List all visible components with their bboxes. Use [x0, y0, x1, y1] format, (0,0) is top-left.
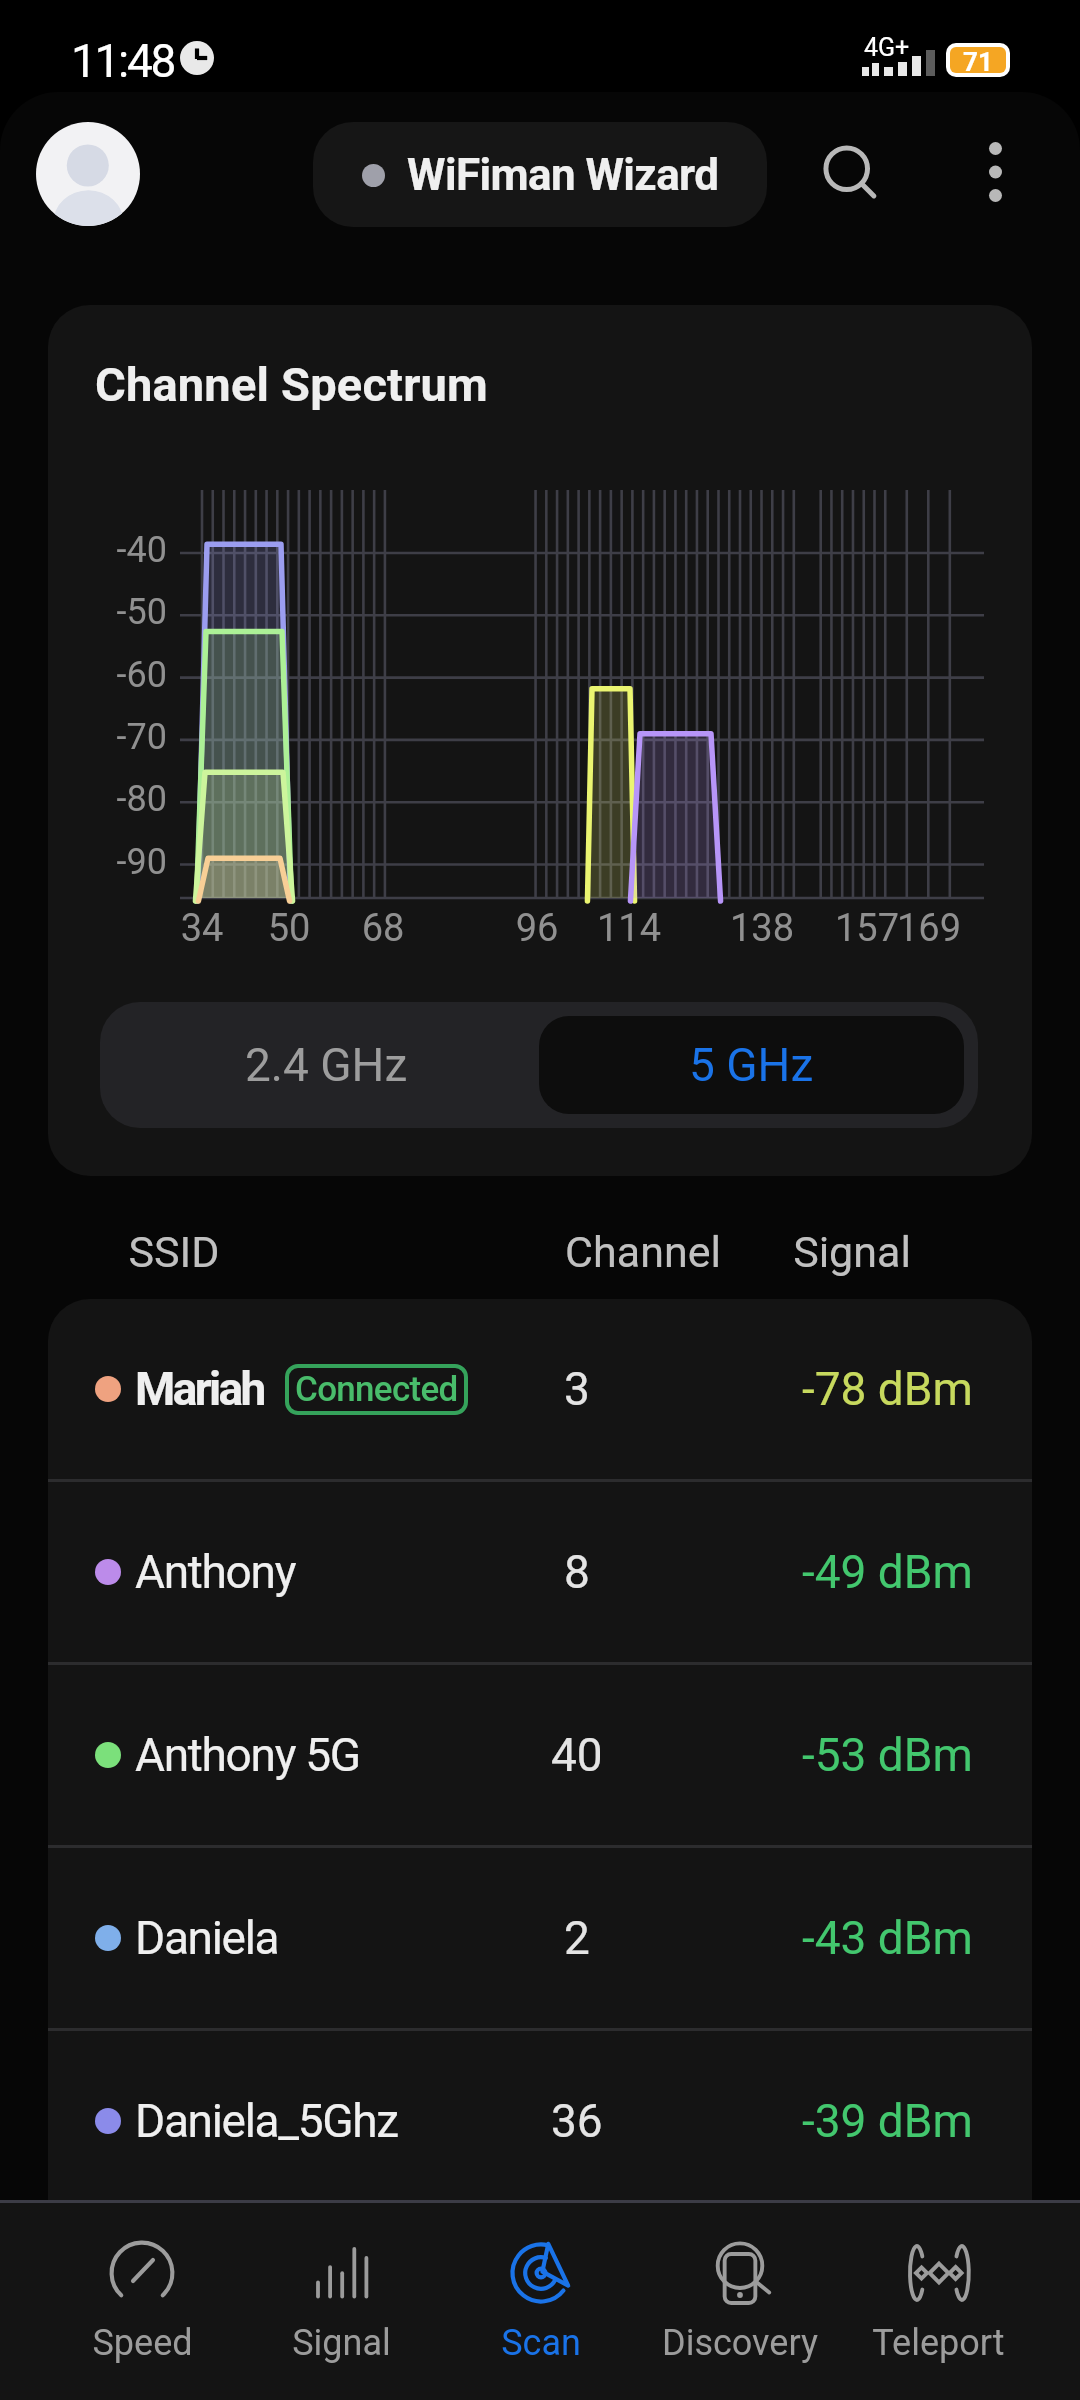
staticText: Daniela_5Ghz [135, 2094, 398, 2148]
staticText: WiFiman Wizard [407, 149, 719, 201]
staticText: 36 [551, 2094, 603, 2148]
staticText: Mariah [135, 1362, 264, 1416]
staticText: -60 [48, 654, 167, 696]
staticText: Daniela [135, 1911, 279, 1965]
staticText: -78 dBm [802, 1362, 973, 1416]
button[interactable]: Anthony 5G [48, 1665, 1032, 1845]
button[interactable]: Teleport [839, 2200, 1038, 2400]
button[interactable]: WiFiman Wizard [313, 122, 767, 227]
staticText: Speed [92, 2322, 193, 2364]
staticText: 8 [564, 1545, 590, 1599]
staticText: -80 [48, 778, 167, 820]
staticText: Signal [292, 2322, 391, 2364]
button[interactable]: 2.4 GHz [114, 1016, 539, 1114]
staticText: Discovery [662, 2322, 818, 2364]
button[interactable]: Signal [242, 2200, 441, 2400]
button[interactable]: 5 GHz [539, 1016, 964, 1114]
staticText: Signal [752, 1227, 952, 1277]
staticText: 5 GHz [689, 1038, 814, 1092]
button[interactable]: Daniela [48, 1848, 1032, 2028]
staticText: -43 dBm [802, 1911, 973, 1965]
staticText: 50 [239, 906, 339, 951]
staticText: 3 [564, 1362, 590, 1416]
staticText: -49 dBm [802, 1545, 973, 1599]
staticText: 96 [487, 906, 587, 951]
staticText: 157 [817, 906, 917, 951]
staticText: 169 [879, 906, 979, 951]
staticText: 34 [152, 906, 252, 951]
staticText: Channel Spectrum [95, 357, 489, 412]
staticText: 40 [551, 1728, 603, 1782]
button[interactable]: Search [800, 124, 904, 228]
button[interactable]: Mariah [48, 1299, 1032, 1479]
staticText: 138 [712, 906, 812, 951]
staticText: Anthony [135, 1545, 296, 1599]
staticText: SSID [74, 1227, 274, 1277]
staticText: Anthony 5G [135, 1728, 360, 1782]
staticText: Scan [501, 2322, 581, 2364]
staticText: 11:48 [71, 34, 175, 88]
button[interactable]: Anthony [48, 1482, 1032, 1662]
staticText: 4G+ [864, 33, 910, 62]
staticText: -39 dBm [802, 2094, 973, 2148]
button[interactable]: Speed [42, 2200, 242, 2400]
staticText: 114 [579, 906, 679, 951]
staticText: 68 [333, 906, 433, 951]
staticText: Connected [295, 1369, 458, 1410]
staticText: -70 [48, 716, 167, 758]
staticText: -90 [48, 841, 167, 883]
staticText: -50 [48, 591, 167, 633]
button[interactable]: More options [947, 124, 1043, 220]
staticText: 71 [963, 47, 993, 73]
staticText: -53 dBm [802, 1728, 973, 1782]
button[interactable]: Profile [36, 122, 140, 226]
staticText: Teleport [872, 2322, 1005, 2364]
button[interactable]: Daniela_5Ghz [48, 2031, 1032, 2200]
staticText: Channel [543, 1227, 743, 1277]
staticText: 2.4 GHz [245, 1038, 408, 1092]
staticText: -40 [48, 529, 167, 571]
button[interactable]: Discovery [640, 2200, 839, 2400]
staticText: 2 [564, 1911, 590, 1965]
button[interactable]: Scan [441, 2200, 640, 2400]
